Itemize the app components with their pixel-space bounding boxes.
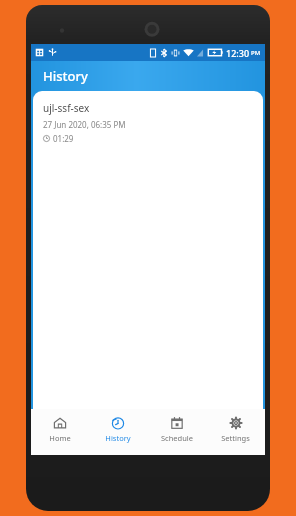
- staticText: PM: [251, 49, 261, 57]
- staticText: History: [105, 433, 131, 443]
- staticText: History: [43, 67, 88, 85]
- staticText: Schedule: [161, 433, 193, 443]
- staticText: Home: [49, 433, 71, 443]
- button[interactable]: Settings: [206, 409, 265, 455]
- staticText: ujl-ssf-sex: [43, 101, 90, 115]
- button[interactable]: Home: [31, 409, 89, 455]
- staticText: 27 Jun 2020, 06:35 PM: [43, 119, 126, 130]
- button[interactable]: ujl-ssf-sex: [33, 91, 263, 152]
- button[interactable]: Schedule: [147, 409, 206, 455]
- staticText: 01:29: [53, 133, 74, 144]
- staticText: Settings: [221, 433, 250, 443]
- staticText: 12:30: [226, 47, 250, 59]
- button[interactable]: History: [89, 409, 147, 455]
